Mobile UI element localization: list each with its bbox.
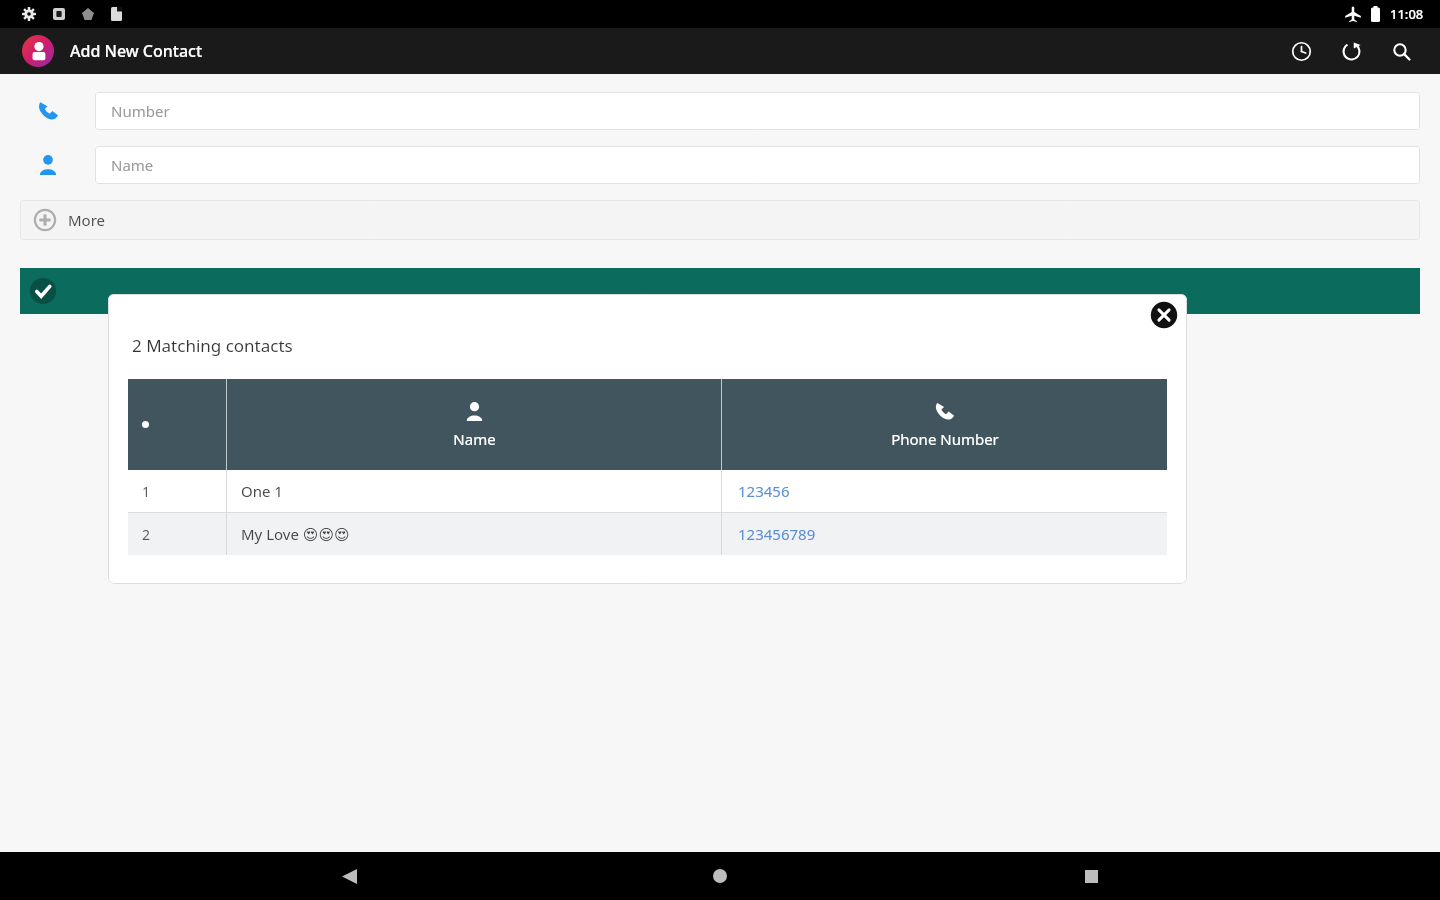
button[interactable]: Refresh (1334, 34, 1368, 68)
staticText: Add New Contact (70, 40, 203, 62)
staticText: 11:08 (1390, 5, 1424, 23)
staticText: 1 (142, 482, 151, 501)
button[interactable]: Search (1384, 34, 1418, 68)
button[interactable]: Save contact (20, 268, 1420, 314)
staticText: 2 Matching contacts (132, 334, 293, 357)
staticText: Number (111, 101, 170, 121)
button[interactable]: Number (95, 92, 1420, 130)
button[interactable]: Recents (1069, 854, 1113, 898)
staticText: Name (453, 429, 496, 449)
button[interactable]: Close (1147, 298, 1181, 332)
button[interactable]: History (1284, 34, 1318, 68)
staticText: One 1 (241, 481, 283, 501)
button[interactable]: Home (698, 854, 742, 898)
staticText: More (68, 210, 106, 230)
button[interactable]: 2 (128, 513, 1167, 555)
button[interactable]: Back (327, 854, 371, 898)
button[interactable]: More (20, 200, 1420, 240)
staticText: Phone Number (891, 429, 999, 449)
staticText: 123456789 (738, 524, 816, 544)
staticText: Name (111, 155, 154, 175)
button[interactable]: Name (95, 146, 1420, 184)
staticText: 123456 (738, 481, 790, 501)
button[interactable]: 1 (128, 470, 1167, 512)
staticText: 2 (142, 525, 151, 544)
staticText: My Love 😍😍😍 (241, 524, 350, 544)
